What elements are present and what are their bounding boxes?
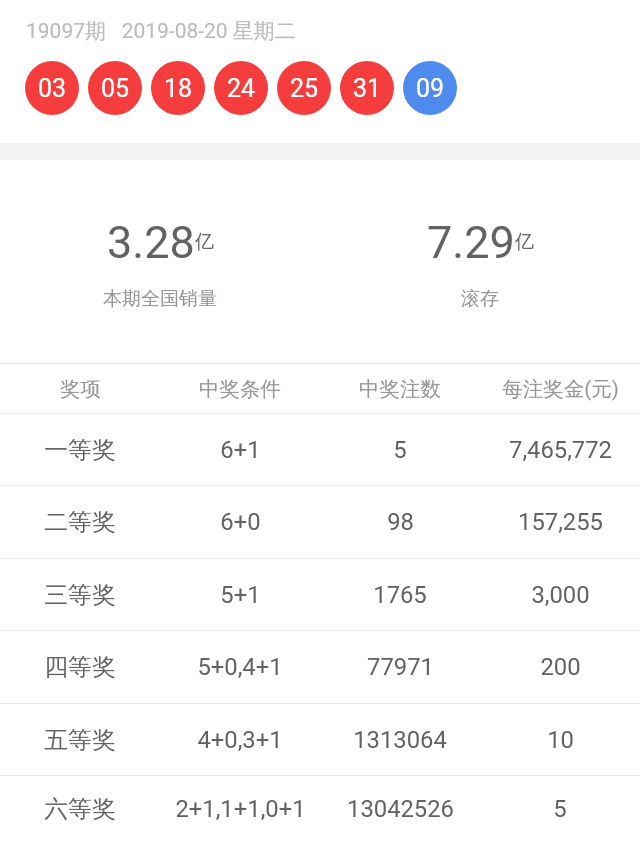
staticText: 10 bbox=[547, 726, 574, 754]
button[interactable]: 7.29 bbox=[320, 213, 640, 311]
staticText: 五等奖 bbox=[44, 725, 116, 755]
button[interactable]: 25 bbox=[277, 61, 331, 115]
button[interactable]: 四等奖 bbox=[0, 631, 640, 703]
staticText: 5 bbox=[393, 436, 407, 464]
staticText: 09 bbox=[416, 74, 445, 103]
button[interactable]: 三等奖 bbox=[0, 559, 640, 630]
button[interactable]: 31 bbox=[340, 61, 394, 115]
button[interactable]: 3.28 bbox=[0, 213, 320, 311]
staticText: 滚存 bbox=[461, 287, 499, 311]
staticText: 05 bbox=[101, 74, 130, 103]
staticText: 中奖注数 bbox=[359, 376, 441, 402]
staticText: 二等奖 bbox=[44, 507, 116, 537]
button[interactable]: 03 bbox=[25, 61, 79, 115]
button[interactable]: 09 bbox=[403, 61, 457, 115]
staticText: 中奖条件 bbox=[199, 376, 281, 402]
button[interactable]: 05 bbox=[88, 61, 142, 115]
staticText: 24 bbox=[227, 74, 256, 103]
button[interactable]: 奖项 bbox=[0, 364, 640, 413]
button[interactable]: 一等奖 bbox=[0, 414, 640, 485]
staticText: 19097期 2019-08-20 星期二 bbox=[26, 18, 296, 44]
button[interactable]: 二等奖 bbox=[0, 486, 640, 558]
button[interactable]: 18 bbox=[151, 61, 205, 115]
staticText: 77971 bbox=[367, 653, 434, 681]
staticText: 奖项 bbox=[60, 376, 101, 402]
staticText: 31 bbox=[353, 74, 382, 103]
staticText: 5 bbox=[553, 795, 567, 823]
staticText: 一等奖 bbox=[44, 435, 116, 465]
staticText: 13042526 bbox=[347, 795, 454, 823]
staticText: 157,255 bbox=[518, 508, 603, 536]
staticText: 亿 bbox=[195, 230, 214, 254]
staticText: 六等奖 bbox=[44, 794, 116, 824]
staticText: 7,465,772 bbox=[509, 436, 612, 464]
staticText: 每注奖金(元) bbox=[502, 376, 619, 402]
staticText: 三等奖 bbox=[44, 580, 116, 610]
staticText: 200 bbox=[540, 653, 581, 681]
button[interactable]: 五等奖 bbox=[0, 704, 640, 775]
staticText: 5+1 bbox=[220, 581, 261, 609]
staticText: 2+1,1+1,0+1 bbox=[175, 795, 306, 823]
staticText: 6+0 bbox=[220, 508, 261, 536]
staticText: 7.29 bbox=[427, 216, 515, 269]
button[interactable]: 六等奖 bbox=[0, 776, 640, 842]
staticText: 6+1 bbox=[220, 436, 261, 464]
staticText: 1313064 bbox=[353, 726, 447, 754]
staticText: 25 bbox=[290, 74, 319, 103]
staticText: 3,000 bbox=[531, 581, 590, 609]
staticText: 98 bbox=[387, 508, 414, 536]
staticText: 4+0,3+1 bbox=[197, 726, 283, 754]
button[interactable]: 24 bbox=[214, 61, 268, 115]
staticText: 03 bbox=[38, 74, 67, 103]
staticText: 1765 bbox=[373, 581, 427, 609]
staticText: 四等奖 bbox=[44, 652, 116, 682]
staticText: 本期全国销量 bbox=[103, 287, 217, 311]
staticText: 18 bbox=[164, 74, 193, 103]
staticText: 3.28 bbox=[107, 216, 195, 269]
other: Winning numbers bbox=[25, 61, 640, 115]
staticText: 5+0,4+1 bbox=[197, 653, 283, 681]
staticText: 亿 bbox=[515, 230, 534, 254]
